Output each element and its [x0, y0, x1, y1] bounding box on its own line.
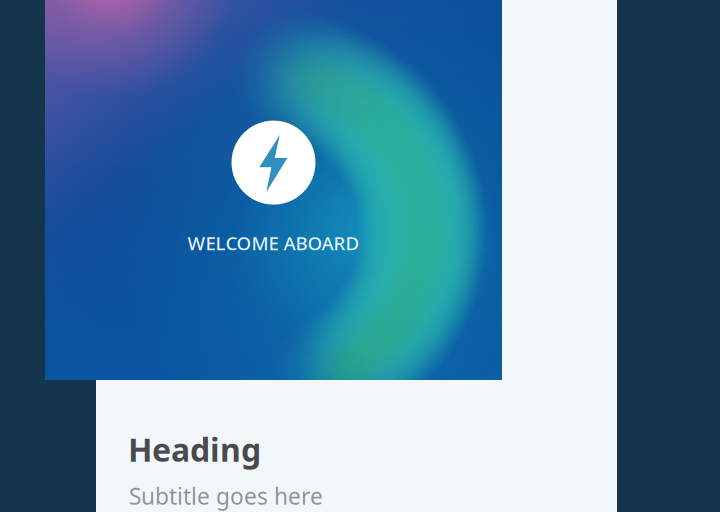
staticText: WELCOME ABOARD [187, 231, 359, 255]
staticText: Subtitle goes here [129, 481, 323, 511]
staticText: Heading [128, 428, 261, 470]
